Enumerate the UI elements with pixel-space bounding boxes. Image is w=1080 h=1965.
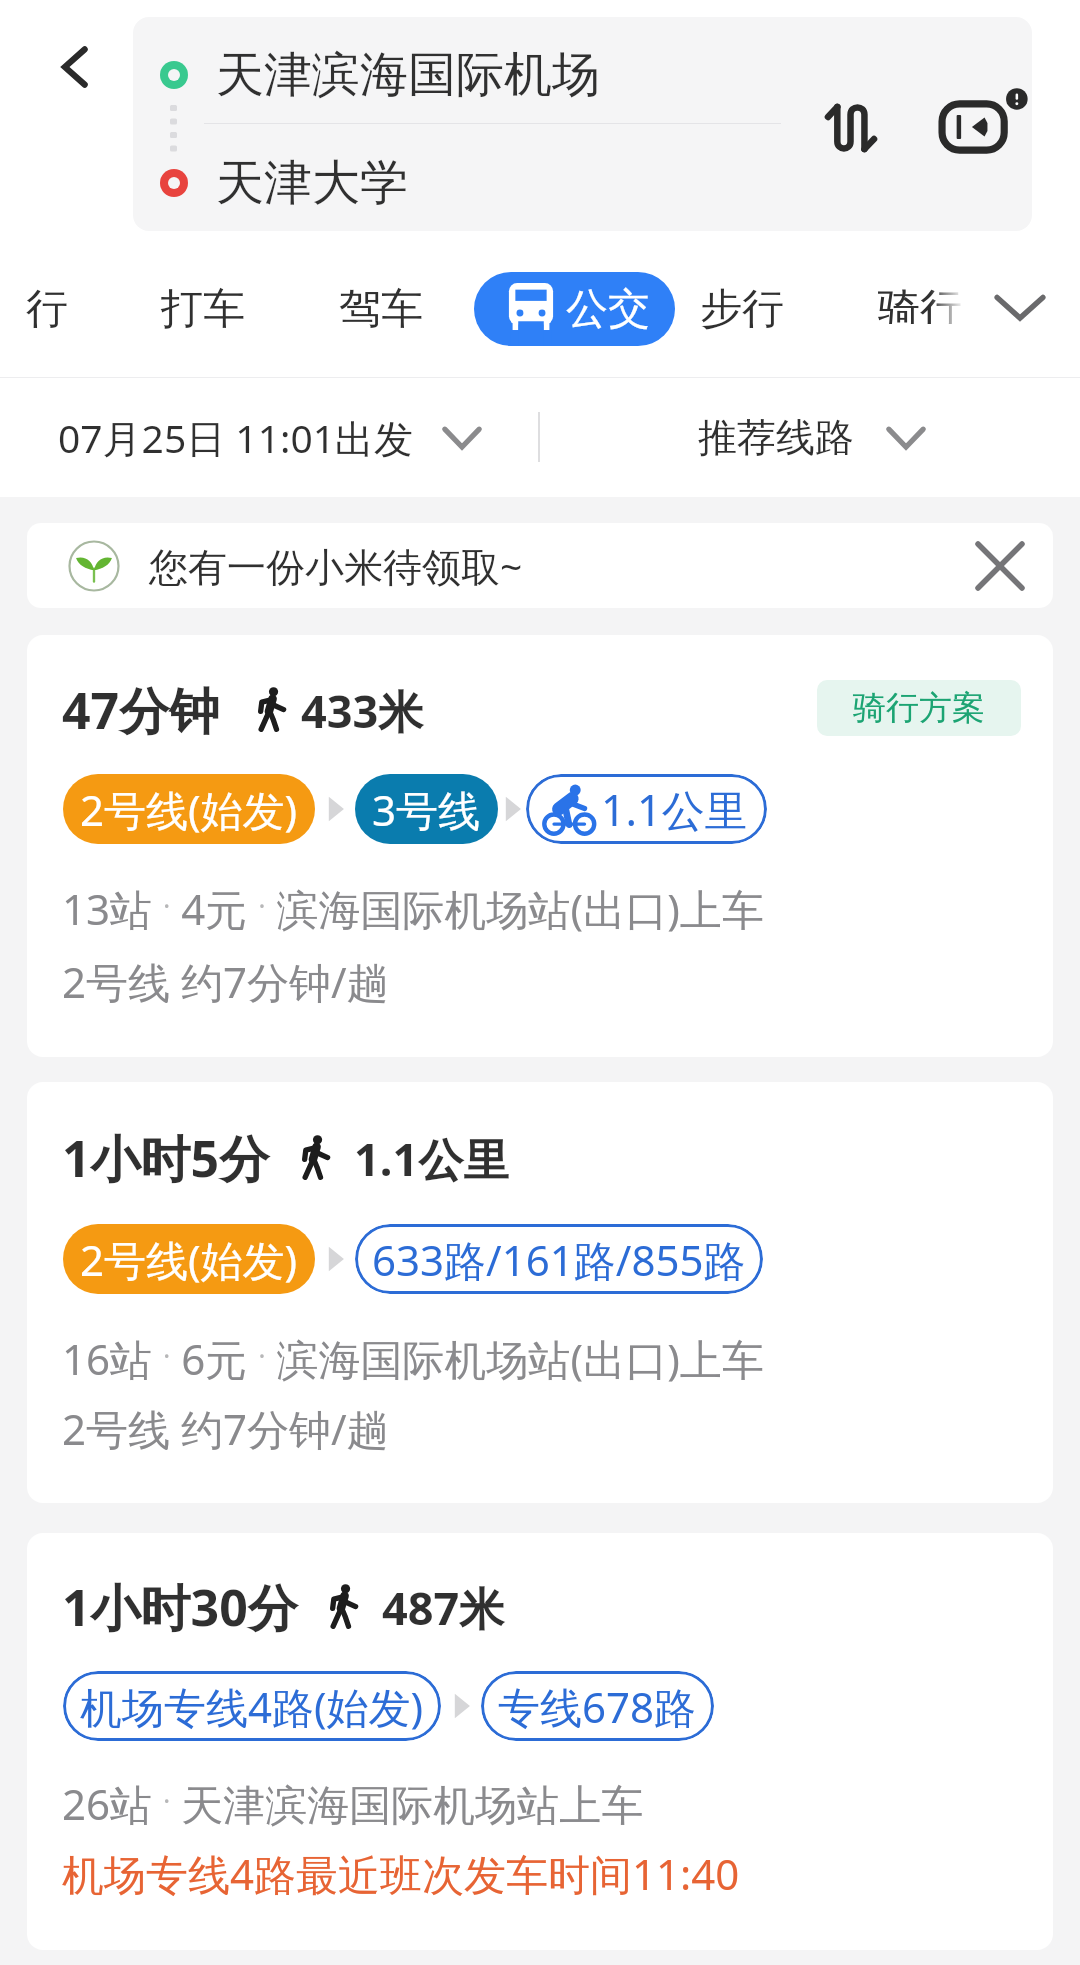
staticText: 47分钟: [62, 676, 220, 744]
button[interactable]: 天津大学: [133, 129, 1032, 231]
staticText: 1小时5分: [62, 1124, 270, 1192]
button[interactable]: 天津滨海国际机场: [133, 21, 1032, 128]
staticText: 2号线(始发): [80, 1231, 298, 1288]
staticText: 驾车: [339, 283, 423, 336]
button[interactable]: 1小时5分: [27, 1082, 1053, 1503]
staticText: 您有一份小米待领取~: [149, 539, 523, 592]
staticText: 2号线(始发): [80, 781, 298, 838]
button[interactable]: More travel modes: [972, 277, 1068, 337]
staticText: 1.1公里: [601, 780, 748, 839]
staticText: 07月25日 11:01出发: [58, 411, 414, 464]
staticText: 1小时30分: [62, 1573, 298, 1641]
staticText: 骑行: [878, 283, 962, 324]
staticText: 16站 · 6元 · 滨海国际机场站(出口)上车: [62, 1330, 764, 1387]
staticText: 机场专线4路最近班次发车时间11:40: [62, 1845, 740, 1902]
staticText: 骑行方案: [853, 687, 985, 729]
staticText: 公交: [566, 283, 650, 336]
button[interactable]: Close: [959, 525, 1041, 607]
staticText: 行: [26, 283, 68, 336]
button[interactable]: 骑行方案: [817, 680, 1021, 736]
staticText: 433米: [301, 680, 424, 741]
staticText: 推荐线路: [698, 413, 854, 462]
button[interactable]: Route preferences: [925, 72, 1035, 182]
button[interactable]: 行: [6, 261, 88, 358]
staticText: 1.1公里: [354, 1128, 509, 1189]
staticText: 13站 · 4元 · 滨海国际机场站(出口)上车: [62, 880, 764, 937]
staticText: 天津大学: [216, 153, 408, 213]
button[interactable]: 骑行: [858, 255, 982, 352]
button[interactable]: 驾车: [319, 261, 443, 358]
staticText: 天津滨海国际机场: [216, 45, 600, 105]
button[interactable]: 步行: [680, 261, 804, 358]
button[interactable]: 您有一份小米待领取~: [27, 523, 1053, 608]
button[interactable]: 47分钟: [27, 635, 1053, 1057]
staticText: 2号线 约7分钟/趟: [62, 1400, 389, 1457]
staticText: 机场专线4路(始发): [80, 1678, 424, 1735]
staticText: 专线678路: [498, 1678, 697, 1735]
staticText: 26站 · 天津滨海国际机场站上车: [62, 1775, 644, 1832]
staticText: 步行: [700, 283, 784, 336]
button[interactable]: 推荐线路: [686, 400, 939, 474]
staticText: 打车: [161, 283, 245, 336]
button[interactable]: Back: [31, 23, 119, 111]
staticText: 633路/161路/855路: [372, 1231, 746, 1288]
button[interactable]: Swap origin and destination: [803, 80, 899, 176]
staticText: 487米: [382, 1577, 505, 1638]
staticText: 3号线: [372, 781, 481, 838]
button[interactable]: 07月25日 11:01出发: [46, 400, 495, 474]
button[interactable]: 公交: [474, 272, 675, 346]
staticText: 2号线 约7分钟/趟: [62, 953, 389, 1010]
button[interactable]: 打车: [141, 261, 265, 358]
button[interactable]: 1小时30分: [27, 1533, 1053, 1950]
